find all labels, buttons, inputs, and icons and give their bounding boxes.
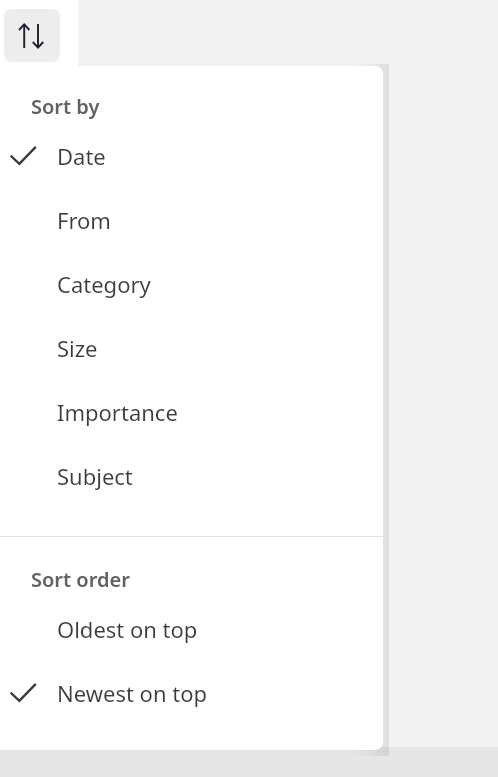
staticText: Oldest on top — [57, 614, 198, 644]
staticText: Importance — [57, 397, 178, 427]
button[interactable]: Newest on top — [0, 661, 383, 725]
staticText: Size — [57, 333, 98, 363]
button[interactable]: Date — [0, 124, 383, 188]
staticText: Category — [57, 269, 151, 299]
button[interactable]: From — [0, 188, 383, 252]
staticText: Sort order — [31, 566, 130, 593]
staticText: Sort by — [31, 93, 100, 120]
button[interactable]: Category — [0, 252, 383, 316]
staticText: Newest on top — [57, 678, 207, 708]
staticText: Subject — [57, 461, 133, 491]
button[interactable]: Size — [0, 316, 383, 380]
staticText: From — [57, 205, 111, 235]
button[interactable]: Sort — [4, 9, 60, 62]
button[interactable]: Importance — [0, 380, 383, 444]
button[interactable]: Subject — [0, 444, 383, 508]
staticText: Date — [57, 141, 106, 171]
button[interactable]: Oldest on top — [0, 597, 383, 661]
